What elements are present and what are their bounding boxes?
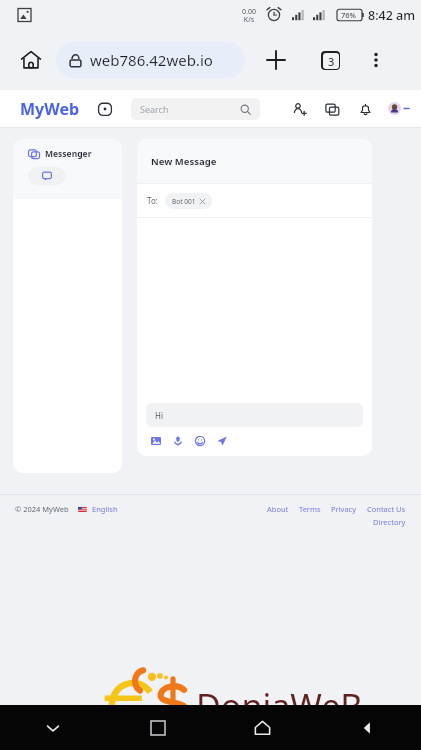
button[interactable]: More options xyxy=(357,41,395,79)
staticText: Search xyxy=(140,103,169,115)
button[interactable]: Insert emoji xyxy=(193,434,206,447)
staticText: Privacy xyxy=(331,504,357,514)
staticText: Contact Us xyxy=(367,504,406,514)
button[interactable]: Terms xyxy=(299,504,321,514)
button[interactable]: Account menu xyxy=(388,102,409,115)
button[interactable]: Notifications xyxy=(355,99,375,119)
staticText: New Message xyxy=(151,155,217,168)
staticText: English xyxy=(92,504,118,514)
button[interactable]: Privacy xyxy=(331,504,357,514)
button[interactable]: Add friend xyxy=(289,99,309,119)
staticText: © 2024 MyWeb xyxy=(15,504,69,514)
button[interactable]: Send xyxy=(215,434,228,447)
button[interactable]: New tab xyxy=(257,41,295,79)
staticText: 0.00 K/s xyxy=(242,7,256,24)
staticText: Hi xyxy=(155,410,163,421)
staticText: Terms xyxy=(299,504,321,514)
staticText: To: xyxy=(147,195,158,206)
button[interactable]: Bot 001 xyxy=(165,193,212,209)
staticText: Bot 001 xyxy=(172,197,196,206)
button[interactable]: Attach image xyxy=(149,434,162,447)
staticText: Directory xyxy=(373,517,406,527)
button[interactable]: Tabs: 3 xyxy=(311,41,349,79)
button[interactable]: Messages xyxy=(322,99,342,119)
button[interactable]: About xyxy=(267,504,289,514)
button[interactable]: New chat xyxy=(28,167,66,185)
staticText: web786.42web.io xyxy=(90,50,213,70)
staticText: MyWeb xyxy=(20,98,80,120)
button[interactable]: Record voice xyxy=(171,434,184,447)
staticText: 8:42 am xyxy=(368,7,416,24)
staticText: 3 xyxy=(328,54,335,69)
button[interactable]: Messenger xyxy=(28,148,92,160)
button[interactable]: Hi xyxy=(146,403,363,427)
button[interactable]: Home xyxy=(210,705,315,750)
staticText: About xyxy=(267,504,289,514)
button[interactable]: web786.42web.io xyxy=(56,42,245,78)
staticText: DoniaWeB xyxy=(196,683,363,729)
button[interactable]: Search xyxy=(131,98,260,120)
button[interactable]: Home feed xyxy=(94,98,116,120)
button[interactable]: English xyxy=(78,504,118,514)
button[interactable]: Directory xyxy=(373,517,406,527)
staticText: 76% xyxy=(341,10,356,20)
button[interactable]: MyWeb xyxy=(20,98,80,120)
button[interactable]: Back xyxy=(315,705,421,750)
staticText: Messenger xyxy=(45,148,92,160)
button[interactable]: Contact Us xyxy=(367,504,406,514)
button[interactable]: Recent apps xyxy=(105,705,210,750)
button[interactable]: Hide keyboard xyxy=(0,705,105,750)
button[interactable]: Home xyxy=(12,41,50,79)
